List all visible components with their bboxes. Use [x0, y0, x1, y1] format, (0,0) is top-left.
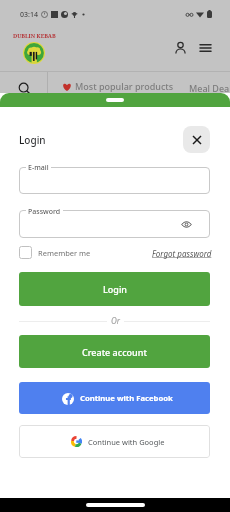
button[interactable]: Continue with Google	[19, 425, 210, 458]
staticText: E-mail	[28, 163, 49, 173]
staticText: Most popular products	[75, 80, 174, 92]
staticText: Forgot password	[152, 248, 212, 259]
button[interactable]: Meal Deal	[189, 82, 230, 94]
button[interactable]: Close	[183, 126, 210, 153]
button[interactable]: Remember me	[19, 246, 91, 259]
staticText: Meal Deal	[189, 82, 230, 94]
button[interactable]: Most popular products	[62, 80, 174, 92]
staticText: Login	[19, 133, 46, 147]
button[interactable]: Continue with Facebook	[19, 382, 210, 414]
staticText: Password	[28, 207, 61, 217]
staticText: Continue with Facebook	[80, 393, 173, 403]
staticText: 03:14	[20, 10, 38, 20]
button[interactable]: Account	[170, 37, 191, 58]
button[interactable]: Forgot password	[152, 248, 212, 259]
staticText: Remember me	[38, 248, 91, 258]
button[interactable]	[19, 210, 210, 238]
staticText: Login	[103, 283, 127, 295]
staticText: DUBLIN KEBAB	[13, 32, 56, 39]
button[interactable]	[19, 167, 210, 194]
button[interactable]: Create account	[19, 335, 210, 368]
staticText: Create account	[82, 346, 147, 358]
button[interactable]: Menu	[195, 37, 216, 58]
button[interactable]: Login	[19, 272, 210, 306]
button[interactable]: Search	[0, 72, 47, 93]
staticText: Continue with Google	[88, 437, 165, 447]
staticText: Or	[111, 315, 120, 326]
